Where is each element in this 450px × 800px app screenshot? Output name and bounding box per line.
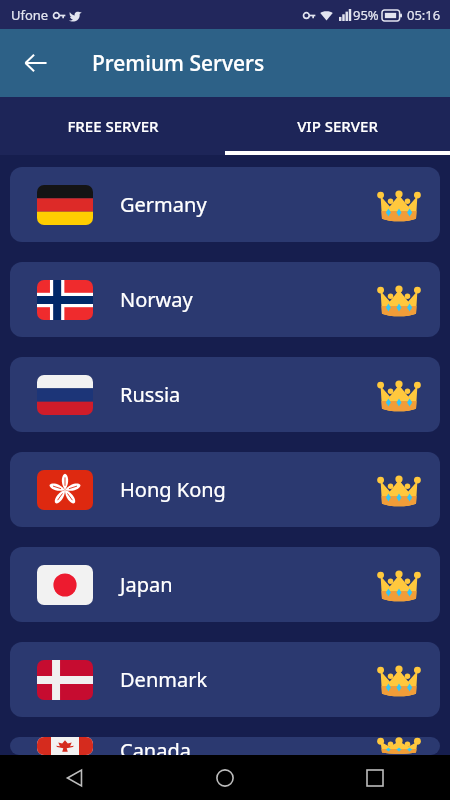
button[interactable]: Hong Kong [10, 452, 440, 527]
button[interactable]: Denmark [10, 642, 440, 717]
staticText: Ufone [11, 6, 49, 24]
button[interactable]: Norway [10, 262, 440, 337]
staticText: Canada [120, 737, 191, 755]
staticText: 05:16 [407, 6, 441, 24]
staticText: Germany [120, 191, 207, 218]
button[interactable]: Recent apps [300, 755, 450, 800]
button[interactable]: Japan [10, 547, 440, 622]
staticText: VIP SERVER [297, 116, 378, 136]
button[interactable]: Russia [10, 357, 440, 432]
staticText: Premium Servers [92, 49, 265, 78]
button[interactable]: Back [14, 41, 58, 85]
button[interactable]: Back [0, 755, 150, 800]
button[interactable]: VIP SERVER [225, 97, 450, 155]
button[interactable]: FREE SERVER [0, 97, 225, 155]
staticText: 95% [353, 6, 379, 24]
button[interactable]: Germany [10, 167, 440, 242]
staticText: Norway [120, 286, 193, 313]
staticText: Hong Kong [120, 476, 226, 503]
staticText: Japan [120, 571, 173, 598]
button[interactable]: Home [150, 755, 300, 800]
staticText: Denmark [120, 666, 208, 693]
staticText: FREE SERVER [67, 116, 159, 136]
button[interactable]: Canada [10, 737, 440, 755]
staticText: Russia [120, 381, 181, 408]
